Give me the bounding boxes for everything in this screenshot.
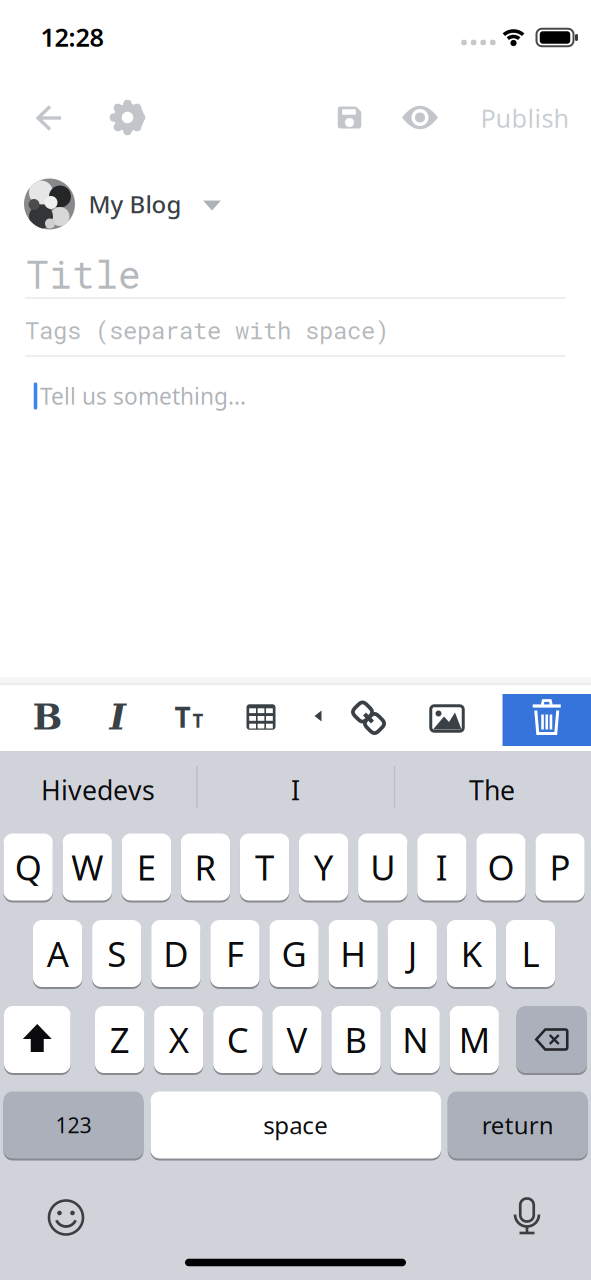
button[interactable]: J xyxy=(388,919,437,988)
staticText: My Blog xyxy=(88,188,181,220)
staticText: G xyxy=(282,930,307,976)
button[interactable]: T xyxy=(240,832,289,901)
staticText: N xyxy=(402,1016,428,1062)
button[interactable]: Settings xyxy=(105,95,149,139)
button[interactable]: Insert image xyxy=(421,695,473,741)
button[interactable]: V xyxy=(272,1005,322,1074)
button[interactable]: Preview xyxy=(398,100,442,134)
staticText: S xyxy=(107,930,126,976)
button[interactable]: Shift xyxy=(4,1006,70,1073)
button[interactable]: G xyxy=(269,919,319,988)
button[interactable]: D xyxy=(151,919,200,988)
button[interactable]: Insert table xyxy=(233,689,289,745)
staticText: D xyxy=(163,930,188,976)
button[interactable]: A xyxy=(33,919,82,988)
button[interactable]: N xyxy=(390,1005,440,1074)
staticText: F xyxy=(226,930,244,976)
staticText: Z xyxy=(110,1016,130,1062)
staticText: 123 xyxy=(55,1111,91,1139)
staticText: T xyxy=(174,698,190,736)
button[interactable]: K xyxy=(447,919,496,988)
button[interactable]: E xyxy=(122,832,171,901)
staticText: C xyxy=(227,1016,249,1062)
staticText: R xyxy=(194,844,216,890)
button[interactable]: O xyxy=(476,832,526,901)
staticText: Y xyxy=(314,844,334,890)
button[interactable]: Italic xyxy=(90,689,146,745)
staticText: Tell us something... xyxy=(40,381,246,411)
button[interactable]: P xyxy=(535,832,585,901)
button[interactable]: Z xyxy=(95,1005,144,1074)
button[interactable]: Heading xyxy=(161,689,217,745)
button[interactable]: H xyxy=(328,919,378,988)
button[interactable]: I xyxy=(417,832,466,901)
staticText: T xyxy=(192,708,203,733)
staticText: A xyxy=(47,930,69,976)
button[interactable]: space xyxy=(150,1090,441,1159)
staticText: The xyxy=(469,772,515,808)
button[interactable]: Snippets xyxy=(300,700,336,732)
button[interactable]: R xyxy=(181,832,230,901)
button[interactable]: F xyxy=(210,919,260,988)
staticText: Q xyxy=(15,844,42,890)
staticText: K xyxy=(461,930,482,976)
staticText: L xyxy=(521,930,539,976)
button[interactable]: Delete xyxy=(516,1006,587,1073)
staticText: O xyxy=(487,844,514,890)
button[interactable]: M xyxy=(450,1005,499,1074)
button[interactable]: Hivedevs xyxy=(0,0,591,1280)
staticText: B xyxy=(345,1016,368,1062)
staticText: I xyxy=(436,844,448,890)
staticText: I xyxy=(109,696,126,738)
button[interactable]: B xyxy=(331,1005,381,1074)
button[interactable]: Publish xyxy=(480,101,569,135)
button[interactable]: Bold xyxy=(19,689,75,745)
button[interactable]: Dictate xyxy=(507,1197,547,1237)
staticText: E xyxy=(137,844,156,890)
staticText: Publish xyxy=(480,101,569,135)
staticText: Hivedevs xyxy=(41,772,155,808)
staticText: Tags (separate with space) xyxy=(25,314,389,346)
staticText: V xyxy=(286,1016,307,1062)
staticText: T xyxy=(255,844,274,890)
button[interactable]: U xyxy=(358,832,407,901)
staticText: P xyxy=(549,844,570,890)
staticText: M xyxy=(459,1016,490,1062)
staticText: W xyxy=(71,844,103,890)
button[interactable]: The xyxy=(0,0,591,1280)
button[interactable]: Save draft xyxy=(334,102,364,132)
button[interactable]: 123 xyxy=(3,1090,143,1159)
staticText: J xyxy=(408,930,417,976)
button[interactable]: Insert link xyxy=(344,693,392,741)
staticText: return xyxy=(482,1109,554,1141)
staticText: H xyxy=(340,930,366,976)
staticText: U xyxy=(370,844,395,890)
button[interactable]: Q xyxy=(3,832,53,901)
button[interactable]: Back xyxy=(32,102,68,133)
button[interactable]: Emoji xyxy=(46,1197,86,1237)
staticText: 12:28 xyxy=(40,20,103,54)
button[interactable]: My Blog xyxy=(0,175,240,233)
button[interactable]: X xyxy=(154,1005,203,1074)
button[interactable]: W xyxy=(63,832,112,901)
button[interactable]: I xyxy=(0,0,591,1280)
staticText: Title xyxy=(26,249,141,299)
button[interactable]: C xyxy=(213,1005,262,1074)
button[interactable]: Clear xyxy=(502,694,591,746)
button[interactable]: S xyxy=(92,919,141,988)
button[interactable]: return xyxy=(448,1090,588,1159)
button[interactable]: L xyxy=(506,919,555,988)
staticText: I xyxy=(291,772,300,808)
button[interactable]: Y xyxy=(299,832,348,901)
staticText: space xyxy=(263,1109,328,1141)
staticText: B xyxy=(32,696,62,738)
staticText: X xyxy=(169,1016,189,1062)
